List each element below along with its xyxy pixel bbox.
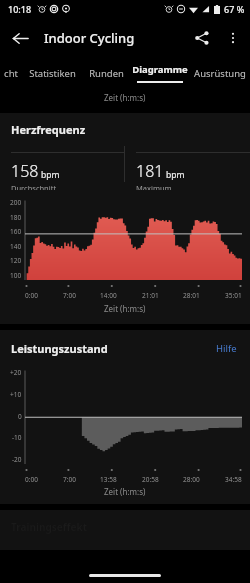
staticText: Zeit (h:m:s) — [104, 92, 146, 103]
staticText: 7:00 — [63, 291, 76, 300]
button[interactable]: Teilen — [186, 22, 218, 54]
staticText: 0 — [18, 412, 22, 421]
staticText: 20:58 — [142, 475, 159, 484]
staticText: Hilfe — [216, 342, 237, 355]
staticText: Indoor Cycling — [44, 29, 135, 47]
button[interactable]: Weitere Optionen — [218, 23, 248, 53]
staticText: 14:00 — [100, 291, 117, 300]
staticText: cht — [4, 67, 18, 80]
staticText: 10:18 — [8, 3, 32, 15]
button[interactable]: Hilfe — [213, 339, 240, 358]
staticText: -20 — [12, 455, 22, 464]
staticText: 200 — [10, 198, 22, 207]
button[interactable]: Runden — [82, 58, 130, 88]
staticText: bpm — [41, 169, 60, 181]
staticText: -10 — [12, 433, 22, 442]
staticText: 67 % — [224, 3, 245, 15]
staticText: 28:00 — [183, 475, 200, 484]
staticText: 181 — [136, 160, 164, 182]
staticText: +20 — [10, 368, 22, 377]
staticText: 28:01 — [183, 291, 200, 300]
button[interactable]: cht — [0, 58, 22, 88]
staticText: 160 — [10, 227, 22, 236]
staticText: 0:00 — [25, 291, 38, 300]
staticText: 21:01 — [142, 291, 159, 300]
staticText: 0:00 — [25, 475, 38, 484]
staticText: bpm — [166, 169, 185, 181]
staticText: +10 — [10, 390, 22, 399]
staticText: Herzfrequenz — [11, 122, 86, 137]
staticText: 140 — [10, 242, 22, 251]
button[interactable]: Zurück — [4, 22, 36, 54]
staticText: Runden — [89, 67, 124, 80]
staticText: 120 — [10, 256, 22, 265]
button[interactable]: Leistungszustand — [0, 330, 250, 504]
staticText: Zeit (h:m:s) — [104, 303, 146, 314]
staticText: 100 — [10, 271, 22, 280]
staticText: Leistungszustand — [11, 341, 108, 356]
button[interactable]: Herzfrequenz — [0, 113, 250, 324]
staticText: Zeit (h:m:s) — [104, 486, 146, 497]
staticText: 35:01 — [225, 291, 242, 300]
button[interactable]: Ausrüstung — [190, 58, 250, 88]
staticText: Maximum — [136, 183, 172, 190]
staticText: 13:58 — [100, 475, 117, 484]
button[interactable]: Statistiken — [22, 58, 82, 88]
staticText: Diagramme — [132, 63, 188, 76]
staticText: Ausrüstung — [194, 67, 246, 80]
staticText: 180 — [10, 213, 22, 222]
staticText: Durchschnitt — [11, 183, 57, 190]
staticText: 7:00 — [63, 475, 76, 484]
button[interactable]: Diagramme — [130, 58, 190, 88]
staticText: 34:58 — [225, 475, 242, 484]
staticText: 158 — [11, 160, 39, 182]
staticText: Statistiken — [29, 67, 76, 80]
